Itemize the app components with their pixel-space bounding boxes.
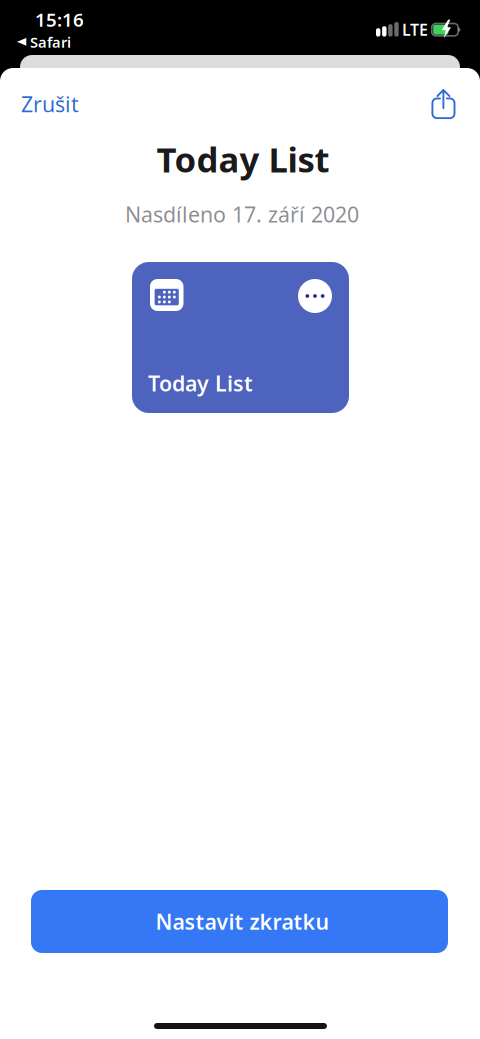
staticText: Zrušit [21, 90, 79, 118]
staticText: LTE [402, 19, 428, 40]
button[interactable]: Nastavit zkratku [31, 890, 448, 953]
staticText: 15:16 [35, 7, 84, 32]
staticText: Today List [148, 369, 253, 397]
button[interactable]: Share [421, 82, 465, 126]
button[interactable]: Zrušit [21, 82, 91, 126]
staticText: Safari [30, 32, 71, 52]
staticText: Nasdíleno 17. září 2020 [125, 200, 359, 228]
staticText: Nastavit zkratku [155, 907, 329, 936]
button[interactable]: Safari [17, 33, 71, 51]
button[interactable]: Today List [132, 262, 349, 413]
staticText: Today List [156, 136, 329, 182]
